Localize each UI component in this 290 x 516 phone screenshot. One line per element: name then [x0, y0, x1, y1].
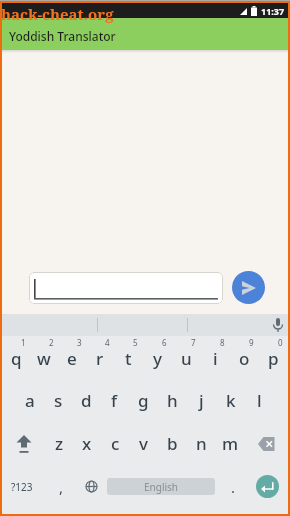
button[interactable]: k: [216, 379, 245, 422]
staticText: c: [111, 432, 120, 455]
staticText: 1: [21, 337, 26, 348]
staticText: m: [222, 432, 239, 455]
staticText: e: [67, 347, 77, 370]
staticText: v: [139, 432, 148, 455]
staticText: 0: [278, 337, 283, 348]
staticText: 5: [133, 337, 138, 348]
button[interactable]: v: [129, 422, 158, 465]
button[interactable]: English: [102, 465, 220, 508]
button[interactable]: .: [220, 465, 246, 508]
button[interactable]: s: [44, 379, 72, 422]
button[interactable]: n: [187, 422, 216, 465]
button[interactable]: [246, 465, 288, 508]
staticText: h: [167, 389, 178, 412]
button[interactable]: h: [158, 379, 187, 422]
button[interactable]: 5: [114, 336, 143, 379]
staticText: q: [11, 347, 22, 370]
staticText: z: [55, 432, 64, 455]
button[interactable]: c: [101, 422, 129, 465]
staticText: i: [213, 347, 218, 370]
staticText: p: [268, 347, 279, 370]
staticText: 6: [162, 337, 167, 348]
button[interactable]: 6: [143, 336, 172, 379]
staticText: j: [199, 389, 204, 412]
button[interactable]: a: [16, 379, 44, 422]
button[interactable]: [2, 422, 45, 465]
staticText: 3: [77, 337, 82, 348]
staticText: English: [144, 480, 179, 494]
staticText: n: [196, 432, 207, 455]
staticText: g: [138, 389, 149, 412]
button[interactable]: 0: [259, 336, 288, 379]
button[interactable]: g: [129, 379, 158, 422]
button[interactable]: [245, 422, 288, 465]
button[interactable]: [29, 272, 223, 304]
staticText: 11:37: [261, 5, 285, 17]
button[interactable]: 7: [172, 336, 201, 379]
button[interactable]: d: [72, 379, 100, 422]
staticText: l: [257, 389, 262, 412]
staticText: r: [96, 347, 104, 370]
button[interactable]: ?123: [2, 465, 42, 508]
staticText: ,: [59, 477, 64, 497]
button[interactable]: 8: [201, 336, 230, 379]
staticText: y: [153, 347, 162, 370]
staticText: 4: [105, 337, 110, 348]
staticText: b: [167, 432, 178, 455]
staticText: t: [125, 347, 132, 370]
staticText: ?123: [11, 480, 33, 494]
button[interactable]: j: [187, 379, 216, 422]
button[interactable]: [232, 271, 265, 304]
staticText: Yoddish Translator: [9, 28, 116, 44]
button[interactable]: 4: [86, 336, 114, 379]
button[interactable]: [80, 465, 102, 508]
staticText: o: [239, 347, 250, 370]
button[interactable]: ,: [42, 465, 80, 508]
staticText: 2: [49, 337, 54, 348]
button[interactable]: b: [158, 422, 187, 465]
staticText: s: [54, 389, 63, 412]
staticText: d: [81, 389, 92, 412]
staticText: hack-cheat.org: [1, 4, 114, 24]
staticText: 7: [191, 337, 196, 348]
staticText: k: [226, 389, 236, 412]
button[interactable]: 2: [30, 336, 58, 379]
button[interactable]: 1: [2, 336, 30, 379]
button[interactable]: 3: [58, 336, 86, 379]
staticText: f: [111, 389, 118, 412]
button[interactable]: x: [73, 422, 101, 465]
staticText: 9: [249, 337, 254, 348]
staticText: 8: [220, 337, 225, 348]
button[interactable]: z: [45, 422, 73, 465]
staticText: a: [25, 389, 35, 412]
staticText: u: [181, 347, 192, 370]
button[interactable]: 9: [230, 336, 259, 379]
button[interactable]: f: [100, 379, 129, 422]
button[interactable]: m: [216, 422, 245, 465]
staticText: .: [231, 477, 236, 497]
staticText: w: [37, 347, 51, 370]
staticText: x: [82, 432, 92, 455]
button[interactable]: l: [245, 379, 274, 422]
